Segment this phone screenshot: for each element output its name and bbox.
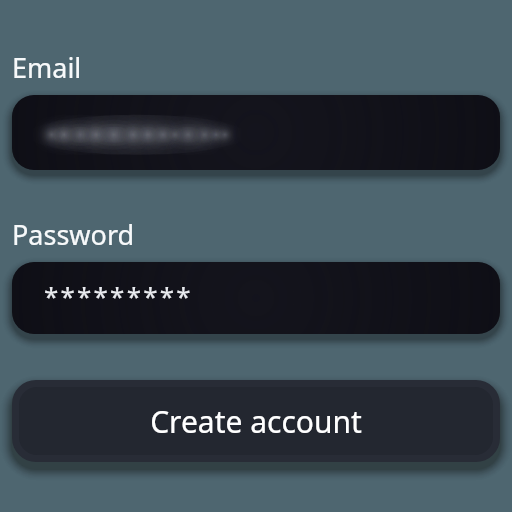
- staticText: Create account: [150, 401, 362, 442]
- staticText: Password: [12, 216, 135, 253]
- staticText: Email: [12, 49, 82, 86]
- staticText: *********: [44, 278, 193, 313]
- button[interactable]: Password input field: [12, 262, 500, 334]
- button[interactable]: Create account: [12, 380, 500, 462]
- button[interactable]: Email input field, john@doe.mail: [12, 95, 500, 170]
